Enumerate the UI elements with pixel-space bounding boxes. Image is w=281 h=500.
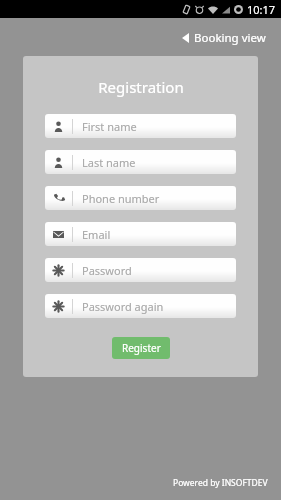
button[interactable]: Password again [45,294,236,318]
staticText: 10:17 [247,2,276,17]
button[interactable]: Register [112,337,170,359]
other: Signal [222,6,230,14]
staticText: Registration [98,77,184,97]
staticText: Email [82,227,111,242]
staticText: Last name [82,155,136,170]
button[interactable]: Booking view [180,27,268,49]
other: Battery [234,5,243,14]
staticText: First name [82,119,137,134]
staticText: Register [122,341,161,355]
other: Alarm [195,5,204,14]
staticText: Booking view [194,30,266,46]
other: SD card [182,5,191,14]
button[interactable]: Phone number [45,186,236,210]
staticText: Powered by INSOFTDEV [173,477,268,489]
button[interactable]: Password [45,258,236,282]
staticText: Password [82,263,132,278]
button[interactable]: Last name [45,150,236,174]
button[interactable]: First name [45,114,236,138]
staticText: Password again [82,299,164,314]
button[interactable]: Email [45,222,236,246]
other: Wi-Fi [208,6,218,14]
staticText: Phone number [82,191,160,206]
